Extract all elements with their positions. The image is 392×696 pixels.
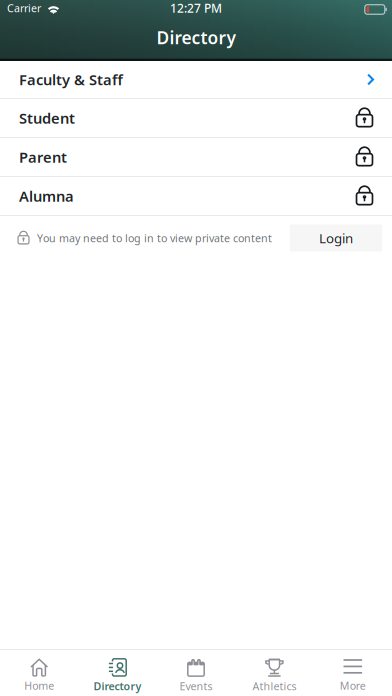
- button[interactable]: Login: [290, 224, 382, 251]
- staticText: Events: [179, 679, 212, 693]
- button[interactable]: Faculty & Staff: [0, 61, 392, 99]
- button[interactable]: More: [314, 650, 392, 696]
- button[interactable]: Student: [0, 99, 392, 138]
- staticText: Parent: [19, 147, 67, 167]
- button[interactable]: Home: [0, 650, 78, 696]
- staticText: 12:27 PM: [170, 0, 222, 16]
- staticText: You may need to log in to view private c…: [37, 231, 272, 245]
- staticText: Directory: [94, 679, 142, 693]
- staticText: Student: [19, 108, 75, 128]
- button[interactable]: Athletics: [235, 650, 314, 696]
- staticText: Athletics: [252, 679, 296, 693]
- staticText: Carrier: [7, 1, 41, 15]
- staticText: Login: [319, 229, 353, 247]
- staticText: Directory: [156, 26, 235, 49]
- staticText: Home: [24, 678, 54, 693]
- button[interactable]: Events: [157, 650, 235, 696]
- button[interactable]: Alumna: [0, 177, 392, 216]
- button[interactable]: Parent: [0, 138, 392, 177]
- button[interactable]: Directory: [78, 650, 157, 696]
- staticText: Faculty & Staff: [19, 70, 123, 89]
- staticText: Alumna: [19, 186, 74, 206]
- staticText: More: [340, 678, 366, 693]
